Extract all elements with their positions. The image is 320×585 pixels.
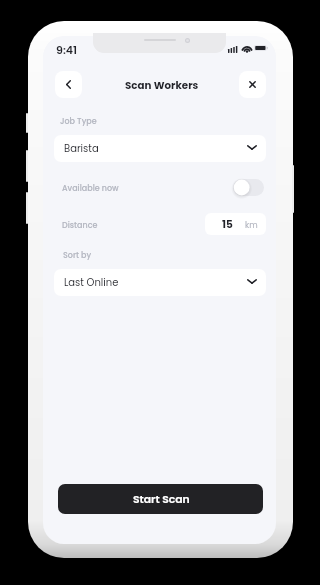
staticText: Sort by [63,250,92,261]
button[interactable]: Close [239,71,266,98]
staticText: km [245,219,258,230]
staticText: Scan Workers [125,78,199,92]
staticText: 15 [222,217,233,232]
staticText: Job Type [60,116,97,127]
button[interactable]: Available now toggle [233,179,264,196]
button[interactable]: Back [55,71,82,98]
staticText: Last Online [64,275,119,289]
staticText: Available now [62,183,119,194]
button[interactable]: Barista [54,135,266,162]
staticText: 9:41 [56,42,78,57]
button[interactable]: Start Scan [58,484,263,514]
staticText: Distance [62,220,98,231]
staticText: Barista [64,141,99,155]
button[interactable]: 15 [205,213,266,235]
button[interactable]: Last Online [54,269,266,296]
staticText: Start Scan [133,492,190,507]
